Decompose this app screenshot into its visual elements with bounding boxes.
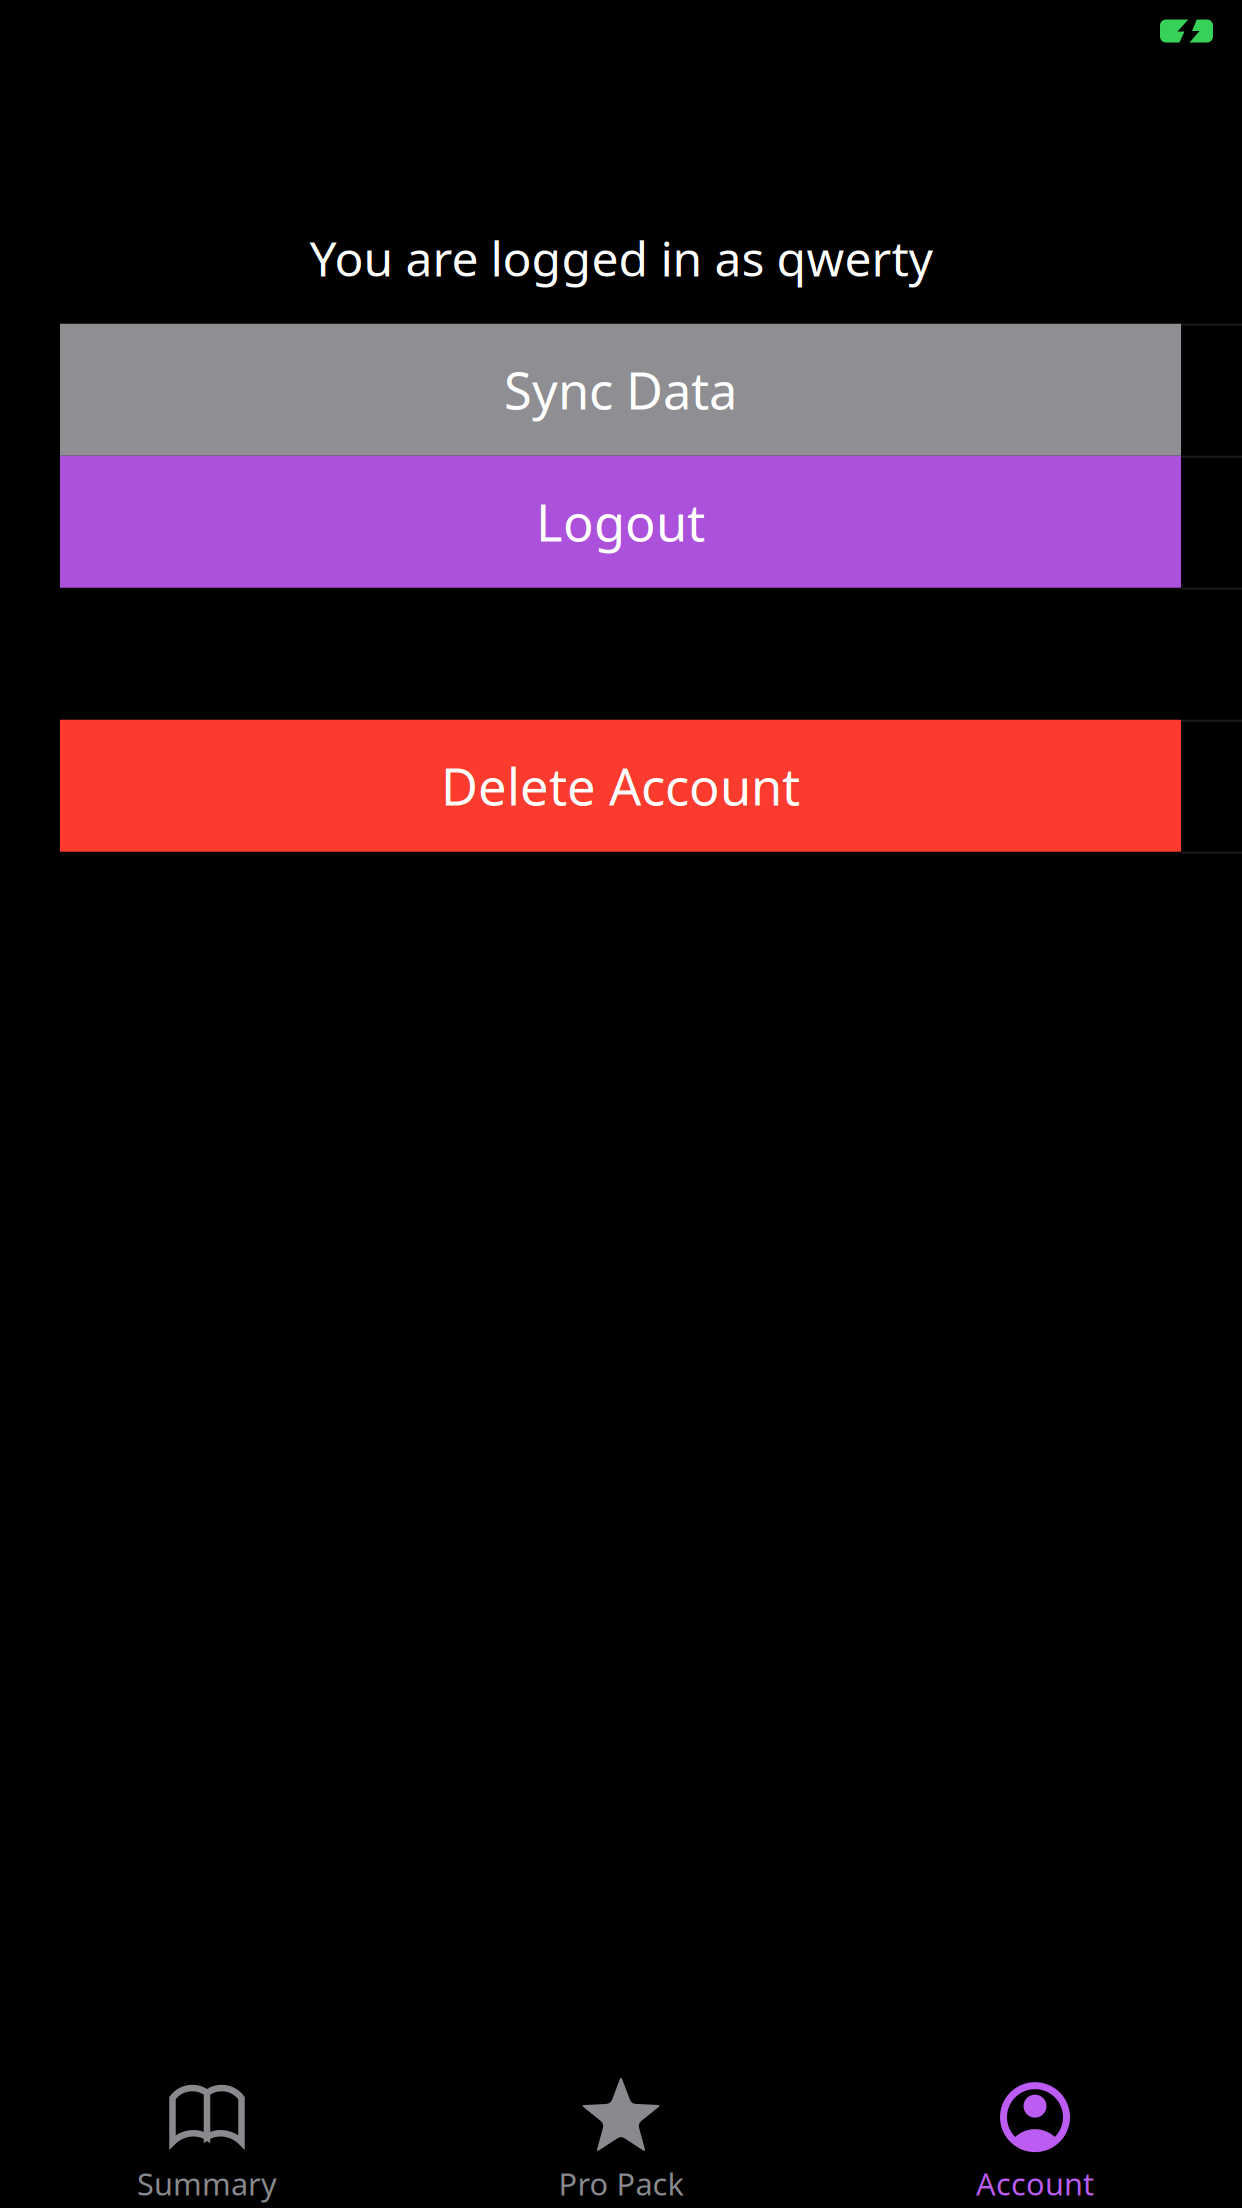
staticText: Summary (137, 2163, 277, 2204)
staticText: Account (976, 2163, 1094, 2204)
button[interactable]: Logout (60, 456, 1181, 588)
button[interactable]: Pro Pack (414, 2078, 828, 2204)
staticText: Delete Account (441, 752, 800, 819)
button[interactable]: Summary (0, 2078, 414, 2204)
button[interactable]: Sync Data (60, 324, 1181, 456)
button[interactable]: Account (828, 2078, 1242, 2204)
staticText: You are logged in as qwerty (309, 226, 932, 290)
staticText: Pro Pack (558, 2163, 683, 2204)
button[interactable]: Delete Account (60, 720, 1181, 852)
staticText: Sync Data (504, 356, 737, 423)
staticText: Logout (536, 488, 705, 555)
